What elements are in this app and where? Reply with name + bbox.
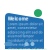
staticText: adipiscing elit sed do eiusmod tempor (7, 30, 42, 38)
staticText: Lorem ipsum dolor sit amet, consectetur (7, 22, 42, 30)
staticText: incididunt ut labore et dolore magna (7, 39, 42, 46)
staticText: aliqua ut enim ad minim (7, 47, 46, 50)
staticText: Welcome (7, 16, 28, 21)
